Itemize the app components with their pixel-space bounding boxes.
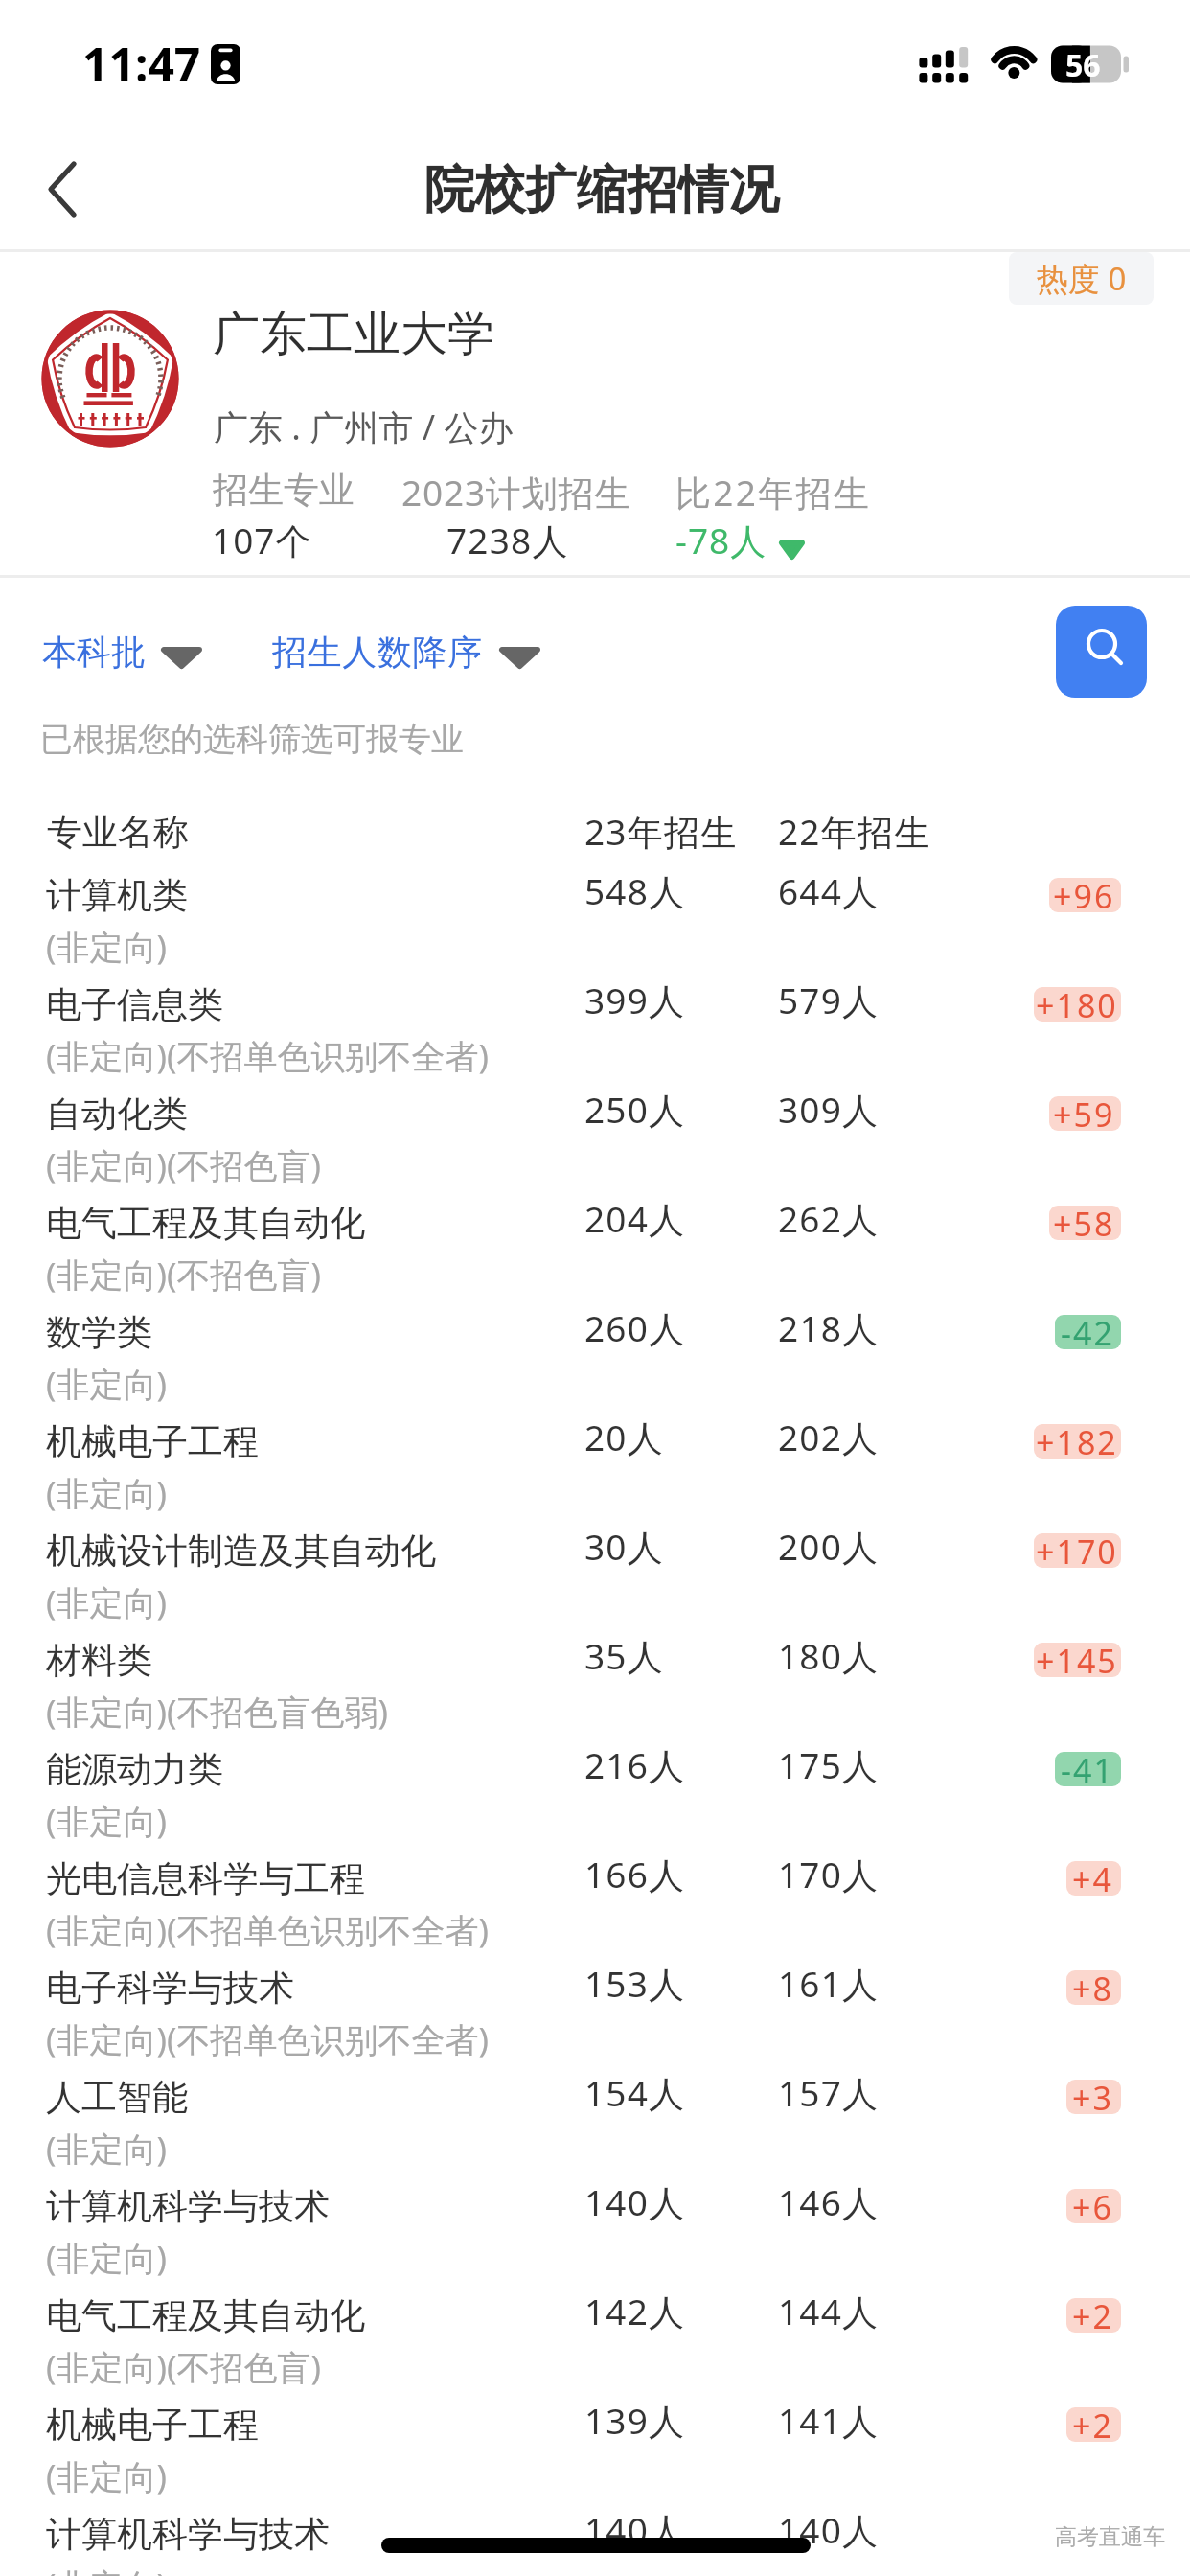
staticText: 30人 [584,1522,664,1571]
staticText: +170 [1036,1533,1118,1564]
staticText: 202人 [778,1413,880,1461]
staticText: -41 [1061,1752,1114,1782]
staticText: 机械设计制造及其自动化 [46,1529,436,1574]
staticText: 本科批 [42,631,146,674]
staticText: 399人 [584,976,686,1024]
staticText: 548人 [584,866,686,915]
button[interactable]: 能源动力类 [0,1735,1190,1844]
staticText: 142人 [584,2287,686,2335]
staticText: 广东 . 广州市 / 公办 [214,403,514,450]
staticText: 电子信息类 [46,982,223,1027]
staticText: (非定向) [46,1798,168,1844]
staticText: 已根据您的选科筛选可报专业 [40,719,464,760]
staticText: (非定向)(不招单色识别不全者) [46,1907,490,1953]
staticText: 数学类 [46,1310,152,1355]
staticText: 157人 [778,2068,880,2117]
staticText: +59 [1053,1096,1115,1127]
staticText: 计算机类 [46,873,188,918]
staticText: +4 [1072,1861,1113,1892]
button[interactable]: 自动化类 [0,1079,1190,1188]
staticText: +8 [1072,1970,1113,2001]
staticText: 广东工业大学 [213,305,494,364]
button[interactable]: 搜索 [1056,606,1147,698]
staticText: 140人 [778,2505,880,2554]
staticText: 自动化类 [46,1092,188,1137]
staticText: 22年招生 [778,807,931,856]
staticText: 153人 [584,1959,686,2008]
staticText: 能源动力类 [46,1747,223,1792]
staticText: 2023计划招生 [401,468,631,517]
button[interactable]: 返回 [13,131,109,246]
button[interactable]: 计算机科学与技术 [0,2499,1190,2576]
staticText: +182 [1036,1424,1118,1455]
staticText: 56 [1065,44,1101,86]
staticText: 144人 [778,2287,880,2335]
button[interactable]: 机械电子工程 [0,1407,1190,1516]
staticText: 180人 [778,1631,880,1680]
staticText: 166人 [584,1850,686,1898]
staticText: (非定向)(不招色盲) [46,2344,322,2390]
staticText: 机械电子工程 [46,2403,259,2448]
button[interactable]: 电气工程及其自动化 [0,2281,1190,2390]
staticText: 309人 [778,1085,880,1134]
staticText: 170人 [778,1850,880,1898]
button[interactable]: 本科批 [19,602,222,698]
staticText: (非定向)(不招单色识别不全者) [46,2016,490,2062]
staticText: (非定向) [46,2563,168,2576]
staticText: (非定向) [46,1579,168,1625]
staticText: 11:47 [82,33,201,95]
button[interactable]: 招生人数降序 [249,602,561,698]
staticText: 比22年招生 [675,468,872,517]
staticText: 644人 [778,866,880,915]
button[interactable]: 材料类 [0,1625,1190,1735]
button[interactable]: 广东工业大学 [0,252,1190,575]
staticText: +180 [1036,987,1118,1018]
button[interactable]: 电子信息类 [0,970,1190,1079]
staticText: 人工智能 [46,2075,188,2120]
button[interactable]: 计算机科学与技术 [0,2172,1190,2281]
staticText: +6 [1072,2189,1113,2219]
staticText: (非定向) [46,1361,168,1407]
staticText: (非定向) [46,924,168,970]
staticText: 35人 [584,1631,664,1680]
staticText: 电子科学与技术 [46,1966,294,2011]
staticText: (非定向)(不招色盲) [46,1252,322,1298]
button[interactable]: 机械电子工程 [0,2390,1190,2499]
staticText: 电气工程及其自动化 [46,1201,365,1246]
staticText: 高考直通车 [1055,2523,1165,2551]
staticText: 院校扩缩招情况 [7,158,1190,222]
staticText: 材料类 [46,1638,152,1683]
button[interactable]: 机械设计制造及其自动化 [0,1516,1190,1625]
staticText: 20人 [584,1413,664,1461]
staticText: -78人 [675,516,767,564]
staticText: (非定向)(不招色盲) [46,1142,322,1188]
staticText: (非定向) [46,2126,168,2172]
staticText: 262人 [778,1194,880,1243]
button[interactable]: 计算机类 [0,861,1190,970]
staticText: +2 [1072,2407,1113,2438]
staticText: (非定向)(不招色盲色弱) [46,1689,389,1735]
staticText: 计算机科学与技术 [46,2512,330,2557]
staticText: 139人 [584,2396,686,2445]
staticText: 光电信息科学与工程 [46,1856,365,1901]
staticText: -42 [1061,1315,1114,1345]
button[interactable]: 电子科学与技术 [0,1953,1190,2062]
staticText: 专业名称 [47,810,189,855]
staticText: 250人 [584,1085,686,1134]
button[interactable]: 数学类 [0,1298,1190,1407]
staticText: +2 [1072,2298,1113,2329]
staticText: 107个 [212,516,312,564]
staticText: +3 [1072,2080,1113,2110]
staticText: 161人 [778,1959,880,2008]
staticText: (非定向) [46,2453,168,2499]
button[interactable]: 人工智能 [0,2062,1190,2172]
staticText: +58 [1053,1206,1115,1236]
staticText: 7238人 [446,516,569,564]
staticText: 机械电子工程 [46,1419,259,1464]
button[interactable]: 光电信息科学与工程 [0,1844,1190,1953]
staticText: 140人 [584,2505,686,2554]
button[interactable]: 电气工程及其自动化 [0,1188,1190,1298]
staticText: 招生专业 [213,468,355,513]
staticText: 电气工程及其自动化 [46,2293,365,2338]
staticText: 175人 [778,1740,880,1789]
